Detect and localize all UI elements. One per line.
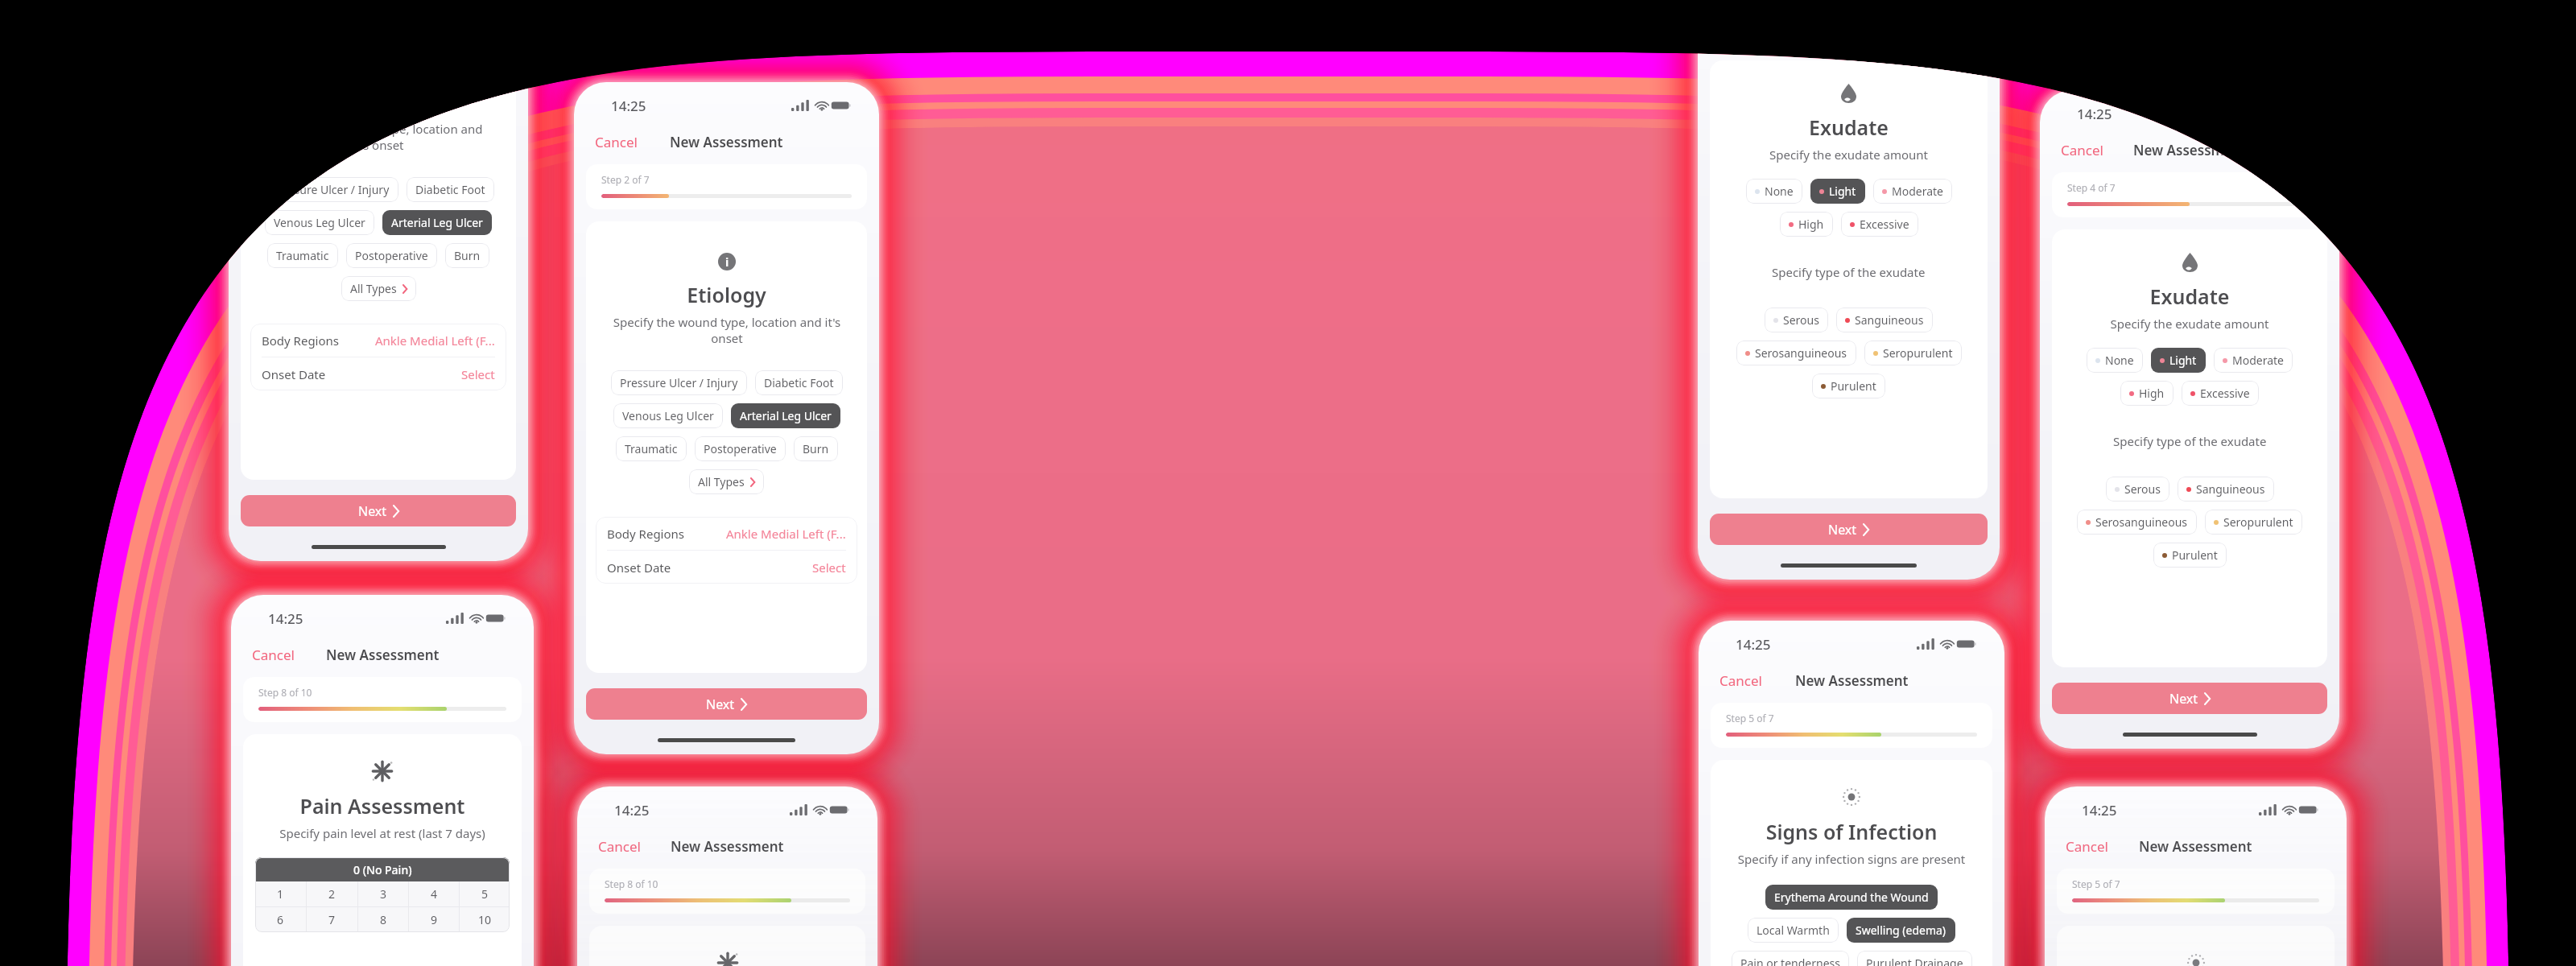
button[interactable]: 6 [255,907,306,932]
button[interactable]: Cancel [592,131,641,153]
button[interactable]: Diabetic Foot [407,177,494,202]
staticText: New Assessment [1795,671,1909,690]
staticText: Seropurulent [1883,345,1953,361]
button[interactable]: 7 [307,907,357,932]
button[interactable]: 5 [460,881,510,906]
staticText: Ankle Medial Left (F... [375,332,495,349]
staticText: Swelling (edema) [1856,923,1946,938]
button[interactable]: Sanguineous [1836,308,1933,332]
button[interactable]: All Types [341,276,416,301]
button[interactable]: High [1780,212,1833,237]
button[interactable]: Light [1810,179,1865,204]
staticText: Select [812,559,846,576]
button[interactable]: Onset Date [596,551,857,584]
staticText: Specify type of the exudate [1772,264,1926,280]
staticText: Venous Leg Ulcer [274,215,365,230]
button[interactable]: Purulent Drainage [1857,951,1972,966]
button[interactable]: Serous [1765,308,1828,332]
button[interactable]: Onset Date [250,357,506,390]
button[interactable]: Next [586,688,867,720]
staticText: Serosanguineous [2095,514,2188,530]
button[interactable]: Purulent [2153,543,2227,568]
button[interactable]: Purulent [1812,374,1885,398]
button[interactable]: Serosanguineous [1736,341,1856,365]
button[interactable]: Cancel [2058,139,2107,161]
button[interactable]: Burn [794,436,838,461]
staticText: Cancel [252,646,295,664]
button[interactable]: Pain or tenderness [1732,951,1849,966]
staticText: 3 [380,886,387,902]
button[interactable]: Serous [2106,477,2169,502]
staticText: Ankle Medial Left (F... [726,526,846,542]
button[interactable]: 0 (No Pain) [255,857,510,881]
button[interactable]: Moderate [2214,348,2293,373]
button[interactable]: 10 [460,907,510,932]
button[interactable]: Light [2151,348,2206,373]
button[interactable]: Venous Leg Ulcer [613,403,723,428]
button[interactable]: Local Warmth [1748,918,1839,943]
button[interactable]: Traumatic [616,436,687,461]
button[interactable]: Seropurulent [2205,510,2302,535]
staticText: All Types [698,474,745,489]
staticText: 14:25 [2077,105,2112,123]
button[interactable]: Next [1710,514,1988,545]
staticText: High [1798,217,1824,232]
button[interactable]: Diabetic Foot [755,370,843,395]
button[interactable]: Cancel [1716,670,1765,691]
staticText: New Assessment [326,646,440,664]
button[interactable]: Seropurulent [1864,341,1962,365]
button[interactable]: Venous Leg Ulcer [265,210,374,235]
button[interactable]: Arterial Leg Ulcer [731,403,840,428]
staticText: 6 [277,912,284,927]
button[interactable]: Cancel [249,644,298,666]
staticText: Postoperative [355,248,428,263]
staticText: Body Regions [262,332,340,349]
button[interactable]: Body Regions [596,517,857,550]
button[interactable]: Postoperative [695,436,786,461]
button[interactable]: Next [2052,683,2327,714]
staticText: Pain or tenderness [1740,956,1840,966]
button[interactable]: Sanguineous [2178,477,2274,502]
staticText: Local Warmth [1757,923,1830,938]
staticText: Burn [454,248,481,263]
button[interactable]: Cancel [2062,836,2112,857]
staticText: Pain Assessment [243,792,522,819]
button[interactable]: Body Regions [250,324,506,357]
button[interactable]: None [2087,348,2143,373]
button[interactable]: 2 [307,881,357,906]
staticText: Cancel [2061,141,2103,159]
staticText: Next [706,696,735,713]
staticText: Light [2169,353,2197,368]
staticText: Next [358,502,387,520]
button[interactable]: Pressure Ulcer / Injury [611,370,747,395]
button[interactable]: Erythema Around the Wound [1765,885,1938,910]
button[interactable]: 1 [255,881,306,906]
button[interactable]: Traumatic [267,243,338,268]
button[interactable]: All Types [689,469,764,494]
staticText: Cancel [1719,671,1762,690]
button[interactable]: 3 [358,881,408,906]
button[interactable]: Swelling (edema) [1847,918,1955,943]
button[interactable]: Next [241,495,516,526]
button[interactable]: None [1746,179,1802,204]
button[interactable]: Moderate [1873,179,1952,204]
button[interactable]: Postoperative [346,243,437,268]
button[interactable]: 8 [358,907,408,932]
button[interactable]: Excessive [2182,381,2259,406]
staticText: Step 2 of 7 [601,173,650,186]
button[interactable]: Excessive [1841,212,1918,237]
staticText: 14:25 [2082,801,2117,819]
button[interactable]: Arterial Leg Ulcer [382,210,492,235]
button[interactable]: Pressure Ulcer / Injury [262,177,398,202]
button[interactable]: High [2120,381,2173,406]
button[interactable]: Cancel [595,836,644,857]
button[interactable]: 9 [409,907,459,932]
button[interactable]: Serosanguineous [2077,510,2197,535]
button[interactable]: 4 [409,881,459,906]
staticText: Postoperative [704,441,777,456]
staticText: Light [1829,184,1856,199]
button[interactable]: Burn [445,243,489,268]
staticText: Purulent Drainage [1866,956,1963,966]
staticText: Arterial Leg Ulcer [391,215,483,230]
staticText: Onset Date [607,559,671,576]
